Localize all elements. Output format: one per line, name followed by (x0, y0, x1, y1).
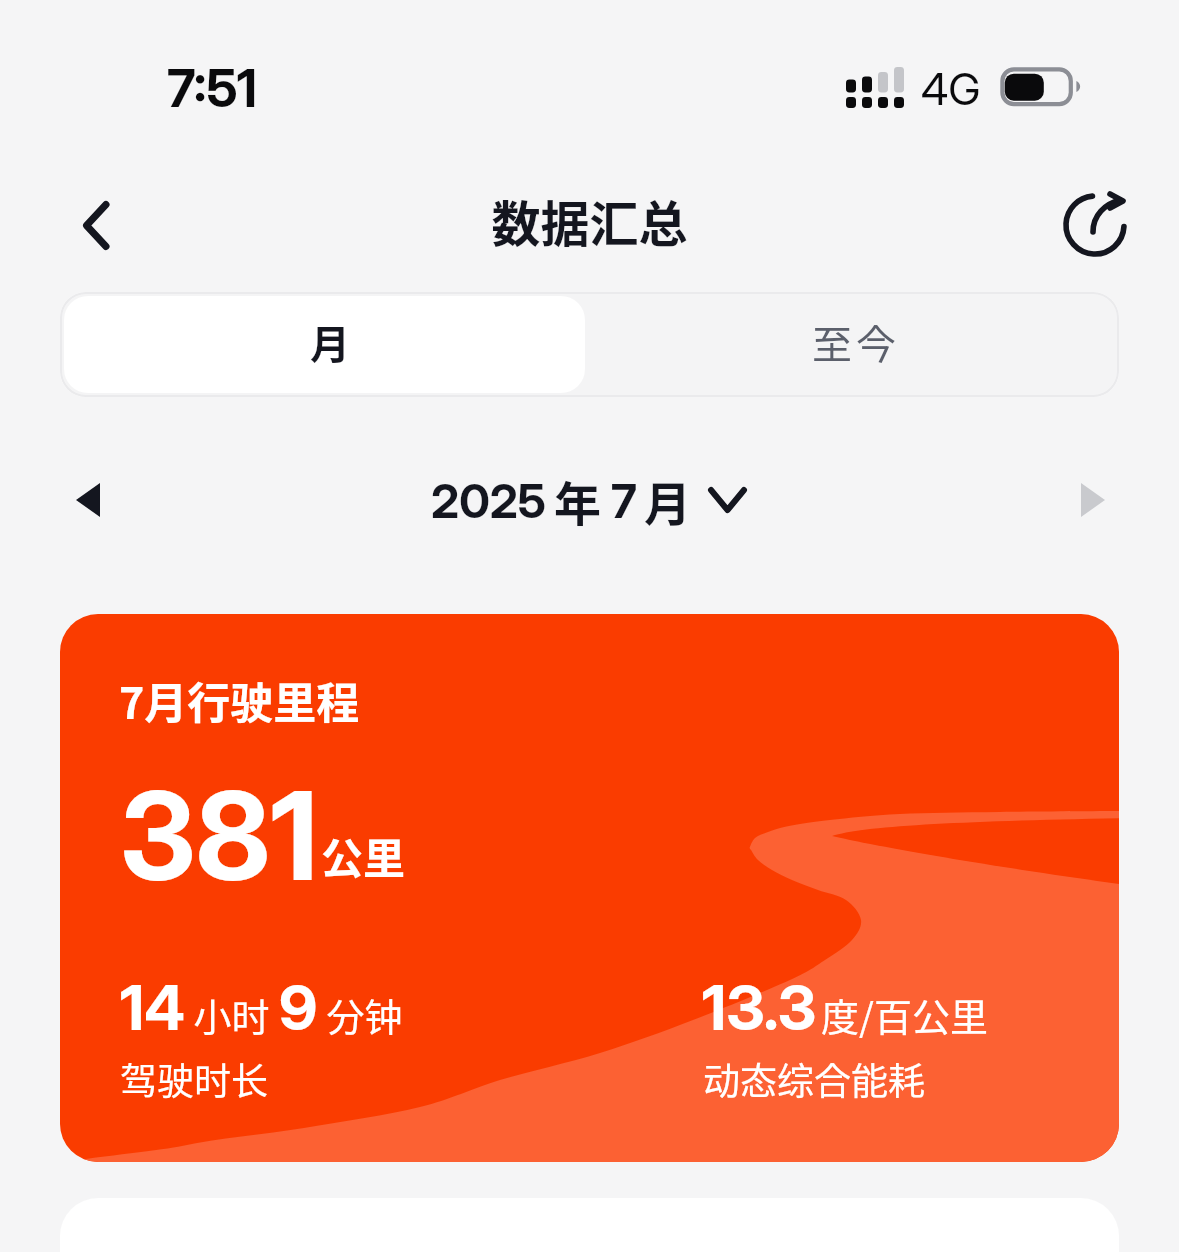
staticText: 月 (644, 466, 691, 534)
staticText: 4G (921, 62, 981, 115)
staticText: 381 (120, 762, 319, 910)
staticText: 动态综合能耗 (703, 1052, 925, 1106)
button[interactable]: 2025 (420, 455, 744, 545)
staticText: 数据汇总 (0, 185, 1179, 256)
staticText: 分钟 (318, 987, 403, 1042)
staticText: 9 (279, 970, 318, 1045)
button[interactable]: Next month (1060, 455, 1126, 545)
staticText: 7 (611, 472, 637, 529)
staticText: 度/百公里 (821, 987, 988, 1042)
staticText: 公里 (321, 825, 406, 886)
staticText: 月 (310, 313, 350, 371)
staticText: 14 (120, 970, 185, 1045)
staticText: 7:51 (167, 57, 257, 120)
staticText: 7月行驶里程 (119, 669, 360, 731)
staticText: 驾驶时长 (120, 1052, 268, 1106)
staticText: 年 (554, 466, 601, 534)
button[interactable]: Previous month (54, 455, 120, 545)
button[interactable]: Share (1050, 181, 1138, 269)
staticText: 2025 (431, 472, 546, 529)
button[interactable]: Back (44, 181, 132, 269)
button[interactable]: 至今 (589, 292, 1119, 397)
button[interactable]: 月 (64, 296, 585, 393)
staticText: 至今 (812, 313, 900, 371)
button[interactable]: 7月行驶里程 (60, 614, 1119, 1162)
staticText: 13.3 (702, 970, 817, 1045)
staticText: 小时 (185, 987, 279, 1042)
